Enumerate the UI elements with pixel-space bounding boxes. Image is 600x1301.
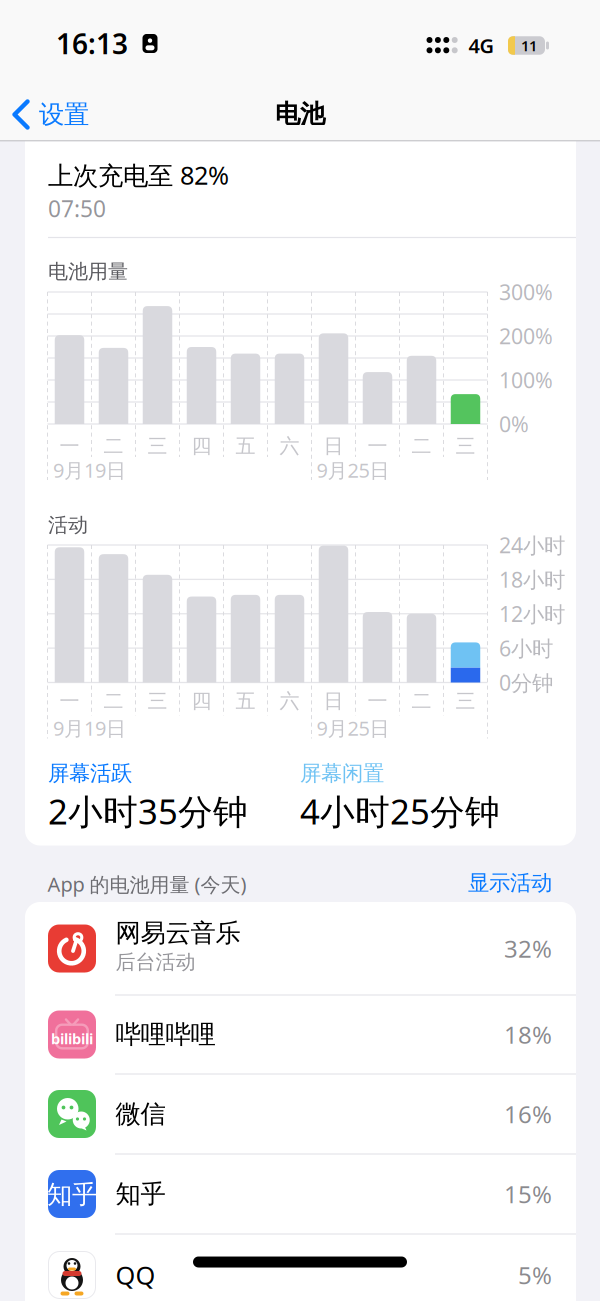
staticText: 显示活动 [468,870,552,896]
staticText: 2小时35分钟 [48,788,248,834]
staticText: 设置 [39,99,89,130]
staticText: 五 [235,434,255,458]
staticText: 9月25日 [316,457,389,483]
staticText: 5% [518,1259,552,1291]
staticText: 6小时 [499,634,553,662]
staticText: 电池 [275,98,325,129]
staticText: 11 [521,36,537,55]
button[interactable]: 显示活动 [422,861,552,905]
staticText: 日 [323,689,343,713]
staticText: 二 [103,689,123,713]
staticText: 0% [499,410,529,438]
button[interactable]: 微信 [25,1074,576,1154]
staticText: 三 [455,689,475,713]
staticText: 日 [323,434,343,458]
staticText: 上次充电至 82% [48,158,229,192]
staticText: 知乎 [115,1178,165,1209]
staticText: 18% [504,1019,552,1050]
staticText: 4小时25分钟 [300,788,500,834]
button[interactable]: 返回设置 [0,87,112,142]
button[interactable]: bilibili [25,995,576,1074]
staticText: 32% [504,933,552,964]
staticText: 屏幕闲置 [300,760,384,787]
staticText: 六 [279,434,299,458]
button[interactable]: QQ [25,1234,576,1301]
staticText: 100% [499,366,553,394]
staticText: 二 [411,434,431,458]
staticText: 网易云音乐 [115,917,240,948]
staticText: 07:50 [48,193,106,223]
staticText: 200% [499,322,553,350]
staticText: 9月25日 [316,715,389,741]
staticText: 屏幕活跃 [48,760,132,787]
staticText: 知乎 [47,1179,97,1210]
staticText: 4G [468,32,494,59]
button[interactable]: 网易云音乐 [25,902,576,995]
staticText: bilibili [51,1029,93,1048]
staticText: 三 [147,689,167,713]
staticText: 微信 [115,1098,165,1129]
staticText: 0分钟 [499,668,553,697]
staticText: 12小时 [499,600,565,628]
staticText: QQ [115,1258,155,1292]
staticText: 哔哩哔哩 [115,1019,215,1050]
staticText: 一 [59,434,79,458]
staticText: 9月19日 [53,457,126,483]
staticText: 18小时 [499,565,565,593]
staticText: 活动 [48,513,88,537]
staticText: 二 [411,689,431,713]
staticText: 一 [367,689,387,713]
staticText: 300% [499,278,553,306]
staticText: 15% [504,1178,552,1210]
staticText: 四 [191,689,211,713]
staticText: 电池用量 [48,259,128,284]
staticText: 五 [235,689,255,713]
staticText: 16:13 [56,25,128,62]
staticText: 三 [455,434,475,458]
staticText: 六 [279,689,299,713]
button[interactable]: 知乎 [25,1154,576,1234]
staticText: 二 [103,434,123,458]
staticText: 四 [191,434,211,458]
staticText: App 的电池用量 (今天) [47,871,246,897]
staticText: 9月19日 [53,715,126,741]
staticText: 后台活动 [115,950,195,974]
staticText: 24小时 [499,531,565,559]
staticText: 一 [367,434,387,458]
staticText: 一 [59,689,79,713]
staticText: 16% [504,1098,552,1130]
staticText: 三 [147,434,167,458]
